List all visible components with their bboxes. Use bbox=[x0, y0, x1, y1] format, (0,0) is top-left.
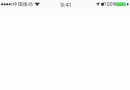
staticText: 中国移动 bbox=[13, 1, 33, 7]
staticText: 100% bbox=[104, 1, 117, 7]
staticText: 9:41 bbox=[60, 0, 71, 8]
